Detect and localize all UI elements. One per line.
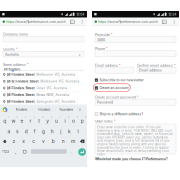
button[interactable]: m xyxy=(68,136,78,146)
button[interactable]: founders xyxy=(55,106,77,113)
staticText: 3000 xyxy=(97,38,105,42)
button[interactable]: Shift xyxy=(0,136,9,146)
staticText: founders xyxy=(59,107,73,111)
staticText: Confirm email address xyxy=(137,64,174,68)
button[interactable]: j xyxy=(56,126,65,136)
staticText: Flinders xyxy=(37,107,50,111)
button[interactable]: x xyxy=(19,136,29,146)
staticText: 5 xyxy=(42,116,43,118)
button[interactable]: More suggestions xyxy=(77,106,82,113)
staticText: 1 xyxy=(8,116,9,118)
button[interactable]: . xyxy=(0,148,4,153)
staticText: g xyxy=(42,129,45,134)
staticText: 1/8 Flinders Street xyxy=(7,86,35,90)
staticText: d xyxy=(25,129,28,134)
button[interactable]: 3 xyxy=(18,115,26,125)
staticText: z xyxy=(12,138,15,144)
button[interactable]: Backspace xyxy=(78,136,86,146)
button[interactable]: More options xyxy=(92,18,95,22)
button[interactable]: h xyxy=(48,126,56,136)
button[interactable]: s xyxy=(13,126,22,136)
button[interactable]: 7 xyxy=(52,115,61,125)
staticText: * xyxy=(106,47,108,51)
button[interactable]: 1/8-12 Flinders Street xyxy=(0,78,87,85)
staticText: Phone xyxy=(95,47,106,51)
staticText: Who/what made you choose F1 Performance? xyxy=(95,157,168,161)
button[interactable]: n xyxy=(58,136,68,146)
staticText: Street address xyxy=(3,63,27,67)
staticText: * xyxy=(111,33,113,37)
button[interactable]: z xyxy=(9,136,19,146)
staticText: https xyxy=(6,20,14,24)
button[interactable]: 1 xyxy=(0,115,9,125)
staticText: Email address xyxy=(139,68,162,72)
staticText: Password xyxy=(97,100,113,104)
button[interactable]: a xyxy=(5,126,13,136)
button[interactable]: 8 xyxy=(61,115,69,125)
staticText: , xyxy=(15,149,16,154)
button[interactable]: 1/8 Flinders Street xyxy=(0,71,87,78)
button[interactable]: 4 xyxy=(26,115,35,125)
button[interactable]: More options xyxy=(0,18,3,22)
button[interactable]: https xyxy=(92,18,152,21)
staticText: Subscribe to our newsletter xyxy=(99,78,143,82)
button[interactable]: 0 xyxy=(78,115,86,125)
button[interactable]: v xyxy=(39,136,48,146)
staticText: q xyxy=(3,118,6,124)
button[interactable]: , xyxy=(0,148,4,153)
button[interactable]: 6 xyxy=(43,115,52,125)
button[interactable]: Space xyxy=(0,148,36,152)
button[interactable]: l xyxy=(74,126,82,136)
button[interactable]: Create an account xyxy=(95,86,128,90)
button[interactable]: k xyxy=(65,126,74,136)
staticText: 3 xyxy=(25,116,26,118)
button[interactable]: Emoji xyxy=(0,148,3,151)
button[interactable]: flinders xyxy=(10,106,33,113)
button[interactable]: Ship to a different address? xyxy=(95,112,143,116)
staticText: b xyxy=(52,138,55,144)
button[interactable]: g xyxy=(39,126,48,136)
button[interactable]: 2 xyxy=(9,115,18,125)
button[interactable]: c xyxy=(29,136,39,146)
button[interactable]: Subscribe to our newsletter xyxy=(95,78,143,82)
staticText: Create account password xyxy=(95,95,137,99)
button[interactable]: Flinders xyxy=(33,106,55,113)
staticText: Email address xyxy=(95,64,119,68)
staticText: * xyxy=(16,47,18,51)
button[interactable]: Tabs xyxy=(0,18,4,21)
button[interactable]: f xyxy=(30,126,39,136)
staticText: 13:24 xyxy=(168,13,176,17)
button[interactable]: https xyxy=(0,18,60,21)
staticText: ://www.f1performance.com.au/ch xyxy=(106,20,158,24)
button[interactable]: b xyxy=(48,136,58,146)
staticText: , Springvale VIC, Australia xyxy=(35,100,76,103)
staticText: Country xyxy=(3,47,16,51)
staticText: n xyxy=(62,138,65,144)
staticText: * xyxy=(174,64,176,68)
button[interactable]: 1/8 Flinders Street xyxy=(0,92,87,98)
staticText: , Melbourne VIC, Australia xyxy=(39,80,80,83)
button[interactable]: 5 xyxy=(35,115,43,125)
button[interactable]: d xyxy=(22,126,30,136)
staticText: * xyxy=(119,64,121,68)
button[interactable]: 1/8 Flinders Street xyxy=(0,85,87,92)
staticText: e xyxy=(20,118,23,124)
staticText: Postcode xyxy=(95,33,111,37)
staticText: t xyxy=(38,118,40,124)
staticText: o xyxy=(72,118,75,124)
button[interactable]: ?123 xyxy=(0,148,9,153)
staticText: c xyxy=(32,138,35,144)
button[interactable]: Tabs xyxy=(92,18,96,21)
staticText: 1/8-12 Flinders Street xyxy=(7,80,39,83)
staticText: 13:04 xyxy=(76,13,84,17)
staticText: 1/8 flinders xyxy=(3,67,20,71)
staticText: Company name xyxy=(3,32,28,36)
button[interactable]: 9 xyxy=(69,115,78,125)
staticText: p xyxy=(81,118,84,124)
staticText: ?123 xyxy=(2,150,9,154)
staticText: r xyxy=(30,118,32,124)
button[interactable]: 1/8 Flinders Street xyxy=(0,98,87,105)
button[interactable]: Enter xyxy=(78,148,86,156)
